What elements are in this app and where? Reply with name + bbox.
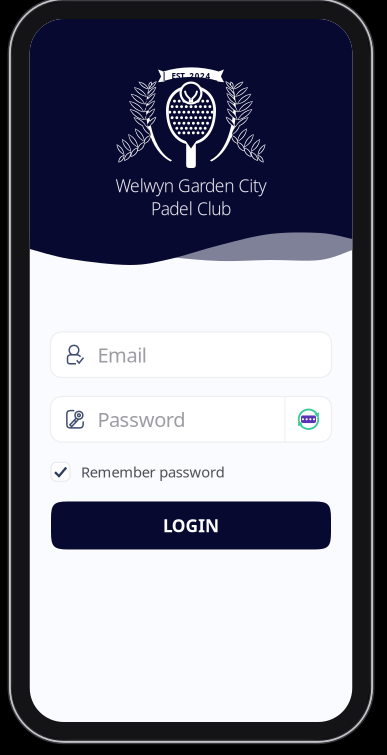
- staticText: Welwyn Garden City: [115, 174, 267, 197]
- button[interactable]: Remember password: [51, 462, 225, 481]
- staticText: Email: [97, 341, 147, 368]
- staticText: Remember password: [81, 462, 225, 481]
- button[interactable]: LOGIN: [51, 501, 331, 549]
- button[interactable]: Email: [50, 332, 331, 377]
- button[interactable]: Password: [50, 396, 331, 442]
- staticText: LOGIN: [163, 514, 219, 537]
- staticText: EST. 2024: [172, 71, 210, 81]
- staticText: Padel Club: [151, 197, 231, 220]
- staticText: Password: [97, 406, 185, 433]
